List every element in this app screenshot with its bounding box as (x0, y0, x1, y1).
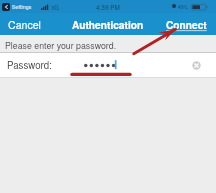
staticText: 3G (51, 3, 59, 11)
staticText: Connect (166, 18, 207, 33)
staticText: Settings (12, 3, 32, 11)
button[interactable]: Back to Settings (2, 3, 10, 11)
staticText: Authentication (72, 18, 144, 33)
staticText: Password: (7, 58, 52, 72)
button[interactable]: Clear text (192, 61, 201, 70)
button[interactable]: Connect (166, 18, 207, 33)
button[interactable]: Cancel (8, 17, 41, 32)
staticText: Please enter your password. (5, 39, 117, 52)
button[interactable]: Password: (0, 53, 216, 77)
staticText: 49% (178, 3, 189, 10)
staticText: Cancel (8, 17, 41, 32)
staticText: 4:39 PM (96, 3, 120, 12)
